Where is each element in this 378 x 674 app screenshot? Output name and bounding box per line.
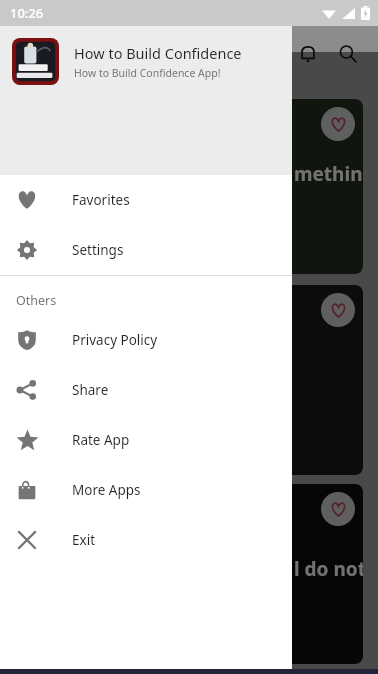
- button[interactable]: Favorite: [14, 285, 363, 475]
- button[interactable]: Favorite: [321, 107, 355, 141]
- staticText: l do not: [294, 556, 363, 582]
- staticText: Settings: [72, 241, 124, 259]
- staticText: Rate App: [72, 431, 130, 449]
- button[interactable]: Favorites: [0, 175, 292, 225]
- staticText: mething: [294, 161, 363, 187]
- button[interactable]: Favorite: [321, 492, 355, 526]
- staticText: Favorites: [72, 191, 130, 209]
- staticText: How to Build Confidence: [74, 43, 242, 63]
- button[interactable]: Exit: [0, 515, 292, 565]
- staticText: How to Build Confidence App!: [74, 66, 221, 80]
- button[interactable]: Search: [328, 34, 368, 74]
- button[interactable]: Notifications: [288, 34, 328, 74]
- staticText: Others: [16, 292, 57, 309]
- button[interactable]: Rate App: [0, 415, 292, 465]
- staticText: 10:26: [10, 4, 44, 22]
- button[interactable]: Favorite: [14, 484, 363, 664]
- staticText: More Apps: [72, 481, 141, 499]
- staticText: Exit: [72, 531, 96, 549]
- button[interactable]: Privacy Policy: [0, 315, 292, 365]
- button[interactable]: Favorite: [321, 293, 355, 327]
- staticText: Privacy Policy: [72, 331, 158, 349]
- button[interactable]: Favorite: [14, 99, 363, 274]
- staticText: Share: [72, 381, 109, 399]
- button[interactable]: Share: [0, 365, 292, 415]
- button[interactable]: Settings: [0, 225, 292, 275]
- button[interactable]: More Apps: [0, 465, 292, 515]
